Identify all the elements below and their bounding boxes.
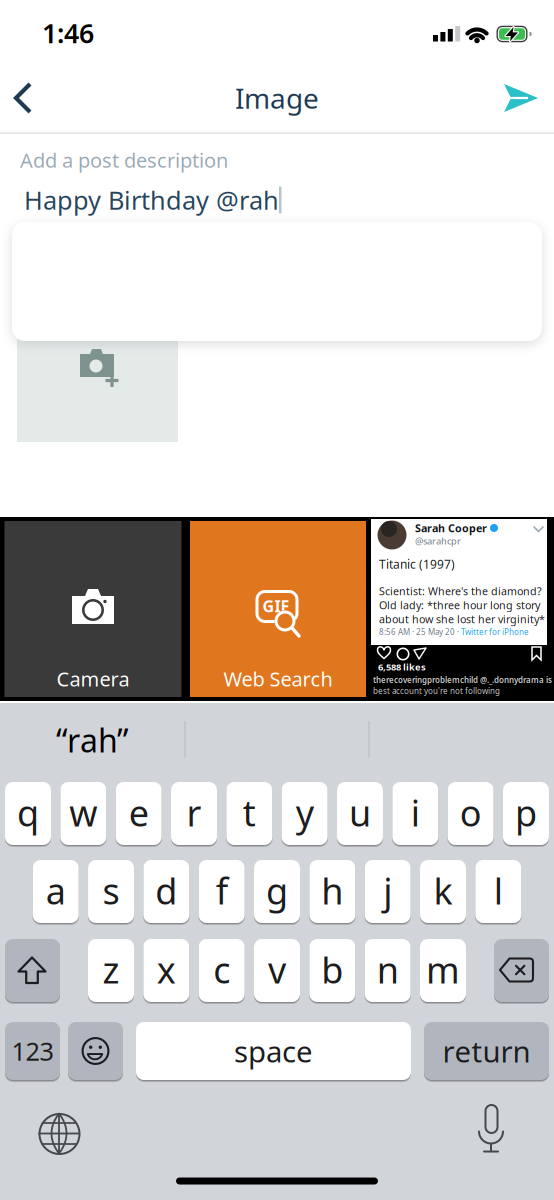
button[interactable]: g: [254, 860, 300, 923]
button[interactable]: “rah”: [2, 712, 182, 768]
button[interactable]: b: [309, 939, 355, 1002]
staticText: e: [129, 789, 149, 836]
button[interactable]: Recent photo: [370, 521, 554, 697]
button[interactable]: x: [143, 939, 189, 1002]
button[interactable]: o: [448, 782, 494, 845]
button[interactable]: f: [199, 860, 245, 923]
staticText: Web Search: [223, 665, 332, 692]
staticText: Happy Birthday @rah: [24, 183, 279, 217]
staticText: Titanic (1997): [379, 556, 455, 572]
button[interactable]: Emoji: [68, 1022, 123, 1080]
staticText: m: [426, 946, 460, 993]
button[interactable]: n: [365, 939, 411, 1002]
staticText: about how she lost her virginity*: [379, 612, 545, 626]
staticText: 123: [11, 1034, 53, 1068]
button[interactable]: d: [143, 860, 189, 923]
staticText: h: [321, 867, 343, 914]
button[interactable]: Add a post description: [20, 145, 554, 175]
staticText: n: [377, 946, 399, 993]
button[interactable]: h: [309, 860, 355, 923]
button[interactable]: r: [171, 782, 217, 845]
staticText: Scientist: Where's the diamond?: [379, 584, 542, 598]
button[interactable]: Numbers: [5, 1022, 60, 1080]
button[interactable]: Web Search: [190, 521, 366, 697]
button[interactable]: Add photo: [17, 282, 178, 442]
staticText: x: [157, 946, 176, 993]
staticText: t: [243, 789, 256, 836]
staticText: return: [442, 1031, 530, 1070]
button[interactable]: w: [60, 782, 106, 845]
staticText: v: [268, 946, 286, 993]
staticText: y: [296, 789, 314, 836]
staticText: therecoveringproblemchild @._.donnydrama…: [373, 675, 554, 685]
button[interactable]: Delete: [494, 939, 549, 1002]
button[interactable]: l: [475, 860, 521, 923]
button[interactable]: Dictation: [469, 1100, 513, 1160]
staticText: s: [102, 867, 119, 914]
button[interactable]: v: [254, 939, 300, 1002]
staticText: b: [321, 946, 343, 993]
button[interactable]: t: [226, 782, 272, 845]
staticText: f: [216, 867, 228, 914]
button[interactable]: p: [503, 782, 549, 845]
button[interactable]: return: [424, 1022, 549, 1080]
staticText: 8:56 AM · 25 May 20 ·: [379, 627, 461, 637]
staticText: Image: [235, 79, 319, 117]
button[interactable]: y: [282, 782, 328, 845]
staticText: space: [234, 1031, 313, 1070]
staticText: Add a post description: [20, 147, 228, 173]
button[interactable]: Post title: [24, 183, 554, 217]
staticText: q: [17, 789, 39, 836]
staticText: Camera: [56, 665, 129, 692]
staticText: 6,588 likes: [378, 661, 426, 673]
button[interactable]: u: [337, 782, 383, 845]
staticText: i: [411, 789, 420, 836]
button[interactable]: z: [88, 939, 134, 1002]
staticText: r: [186, 789, 201, 836]
button[interactable]: space: [136, 1022, 411, 1080]
staticText: GIF: [262, 595, 289, 617]
button[interactable]: e: [116, 782, 162, 845]
button[interactable]: k: [420, 860, 466, 923]
staticText: “rah”: [56, 719, 128, 761]
staticText: @sarahcpr: [415, 535, 461, 547]
staticText: c: [213, 946, 230, 993]
staticText: o: [460, 789, 482, 836]
staticText: z: [102, 946, 119, 993]
staticText: d: [155, 867, 177, 914]
button[interactable]: q: [5, 782, 51, 845]
staticText: j: [383, 867, 392, 914]
staticText: Twitter for iPhone: [461, 627, 529, 637]
button[interactable]: a: [33, 860, 79, 923]
button[interactable]: Back: [4, 79, 48, 117]
staticText: best account you're not following: [373, 686, 500, 696]
button[interactable]: Send: [501, 83, 541, 113]
button[interactable]: Camera: [4, 521, 181, 697]
staticText: g: [266, 867, 288, 914]
staticText: w: [69, 789, 97, 836]
button[interactable]: Shift: [5, 939, 60, 1002]
staticText: l: [494, 867, 503, 914]
button[interactable]: i: [392, 782, 438, 845]
button[interactable]: s: [88, 860, 134, 923]
button[interactable]: m: [420, 939, 466, 1002]
staticText: 1:46: [42, 15, 94, 51]
staticText: p: [515, 789, 537, 836]
staticText: u: [349, 789, 371, 836]
staticText: a: [46, 867, 66, 914]
staticText: Sarah Cooper: [415, 521, 487, 535]
staticText: k: [433, 867, 452, 914]
button[interactable]: Next keyboard: [31, 1106, 87, 1162]
staticText: Old lady: *three hour long story: [379, 598, 540, 612]
button[interactable]: c: [199, 939, 245, 1002]
button[interactable]: j: [365, 860, 411, 923]
